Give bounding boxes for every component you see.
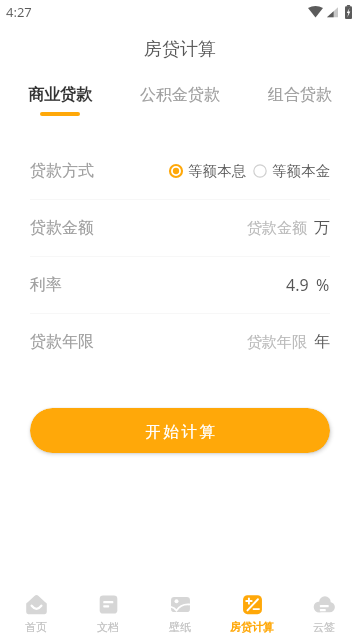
button[interactable]: 开始计算 (30, 408, 330, 453)
button[interactable]: 商业贷款 (0, 80, 120, 124)
staticText: % (316, 274, 330, 296)
button[interactable]: 壁纸 (144, 587, 216, 641)
staticText: 开始计算 (144, 422, 216, 442)
staticText: 壁纸 (169, 620, 191, 634)
staticText: 年 (314, 332, 330, 352)
button[interactable]: 贷款方式 (0, 143, 360, 199)
button[interactable]: 贷款年限 (0, 314, 360, 370)
staticText: 云签 (313, 620, 335, 634)
staticText: 贷款年限 (247, 333, 307, 352)
staticText: 万 (314, 218, 330, 238)
staticText: 4:27 (6, 3, 32, 21)
staticText: 等额本金 (272, 162, 330, 180)
button[interactable]: 房贷计算 (216, 587, 288, 641)
button[interactable]: 贷款金额 (0, 200, 360, 256)
staticText: 贷款方式 (30, 161, 94, 181)
staticText: 贷款年限 (30, 332, 94, 352)
staticText: 贷款金额 (30, 218, 94, 238)
staticText: 贷款金额 (247, 219, 307, 238)
staticText: 组合贷款 (268, 85, 332, 105)
staticText: 4.9 (286, 274, 309, 296)
button[interactable]: 等额本息 (169, 162, 246, 180)
button[interactable]: 利率 (0, 257, 360, 313)
button[interactable]: 首页 (0, 587, 72, 641)
staticText: 利率 (30, 275, 62, 295)
button[interactable]: 云签 (288, 587, 360, 641)
button[interactable]: 等额本金 (253, 162, 330, 180)
button[interactable]: 公积金贷款 (120, 80, 240, 124)
staticText: 房贷计算 (144, 38, 216, 61)
button[interactable]: 文档 (72, 587, 144, 641)
button[interactable]: 组合贷款 (240, 80, 360, 124)
staticText: 首页 (25, 620, 47, 634)
staticText: 公积金贷款 (140, 85, 220, 105)
staticText: 文档 (97, 620, 119, 634)
staticText: 商业贷款 (28, 85, 92, 105)
staticText: 房贷计算 (230, 620, 274, 634)
staticText: 等额本息 (188, 162, 246, 180)
